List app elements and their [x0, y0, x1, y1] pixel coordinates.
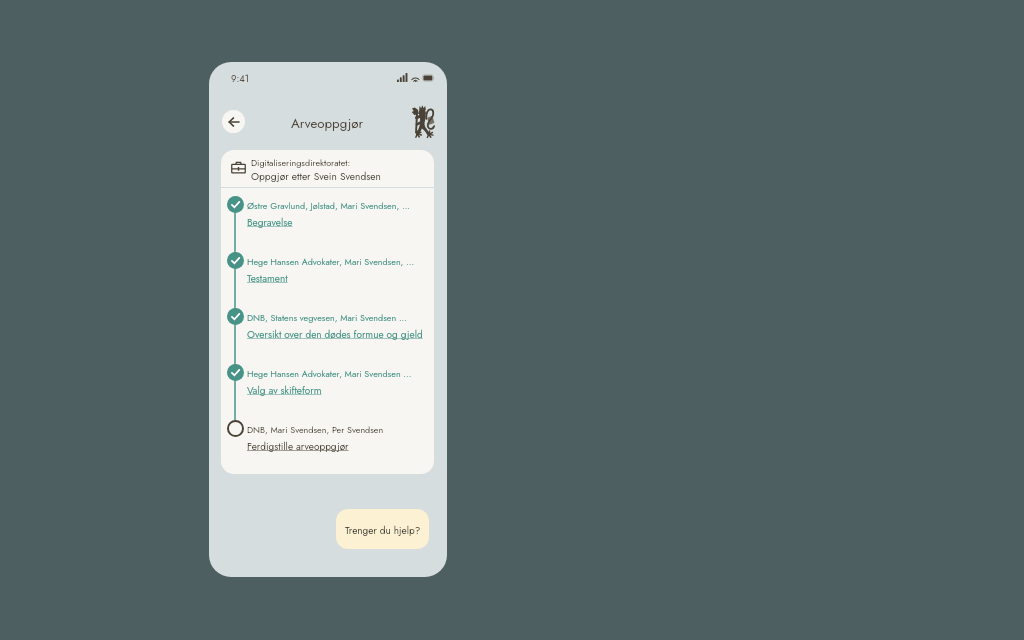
staticText: Trenger du hjelp?	[345, 523, 421, 537]
staticText: Oppgjør etter Svein Svendsen	[251, 169, 381, 184]
staticText: DNB, Statens vegvesen, Mari Svendsen ...	[247, 311, 408, 324]
button[interactable]: Back	[222, 110, 245, 133]
staticText: Ferdigstille arveoppgjør	[247, 439, 349, 453]
button[interactable]: DNB, Mari Svendsen, Per Svendsen	[221, 420, 434, 460]
staticText: Digitaliseringsdirektoratet:	[251, 156, 351, 169]
button[interactable]: Hege Hansen Advokater, Mari Svendsen, ..…	[221, 252, 434, 308]
staticText: DNB, Mari Svendsen, Per Svendsen	[247, 423, 384, 436]
button[interactable]: Trenger du hjelp?	[336, 509, 429, 549]
staticText: Begravelse	[247, 215, 293, 229]
other: Norwegian coat of arms	[411, 105, 435, 137]
staticText: Testament	[247, 271, 288, 285]
staticText: Østre Gravlund, Jølstad, Mari Svendsen, …	[247, 199, 411, 212]
staticText: Oversikt over den dødes formue og gjeld	[247, 327, 423, 341]
button[interactable]: Østre Gravlund, Jølstad, Mari Svendsen, …	[221, 196, 434, 252]
staticText: Hege Hansen Advokater, Mari Svendsen, ..…	[247, 255, 415, 268]
staticText: Hege Hansen Advokater, Mari Svendsen ...	[247, 367, 412, 380]
button[interactable]: DNB, Statens vegvesen, Mari Svendsen ...	[221, 308, 434, 364]
button[interactable]: Hege Hansen Advokater, Mari Svendsen ...	[221, 364, 434, 420]
staticText: Valg av skifteform	[247, 383, 322, 397]
staticText: Arveoppgjør	[291, 114, 364, 133]
staticText: 9:41	[231, 72, 250, 86]
